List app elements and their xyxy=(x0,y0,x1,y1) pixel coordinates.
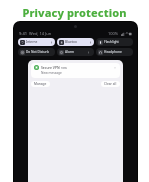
staticText: Clear all xyxy=(104,82,117,86)
staticText: Privacy protection xyxy=(22,5,127,20)
button[interactable]: Secure VPN xyxy=(31,63,120,78)
staticText: 9:41 xyxy=(19,31,27,36)
staticText: 100% xyxy=(108,31,119,36)
button[interactable]: Do Not Disturb xyxy=(18,48,55,56)
staticText: now xyxy=(61,66,67,70)
button[interactable]: Manage xyxy=(31,81,50,87)
button[interactable]: Flashlight xyxy=(96,38,133,46)
button[interactable]: Internet xyxy=(18,38,55,46)
staticText: Flashlight xyxy=(104,40,119,44)
button[interactable]: Expand notification xyxy=(113,66,117,70)
button[interactable]: Alarm xyxy=(57,48,94,56)
staticText: Do Not Disturb xyxy=(26,50,49,54)
staticText: Alarm xyxy=(65,50,75,54)
staticText: Secure VPN xyxy=(41,65,60,70)
button[interactable]: Headphone needs xyxy=(96,48,133,56)
staticText: Bluetooth xyxy=(65,40,77,44)
staticText: Wed, 14 Jun xyxy=(29,31,52,36)
button[interactable]: Clear all xyxy=(101,81,120,87)
staticText: New message xyxy=(41,71,62,75)
staticText: Manage xyxy=(34,82,47,86)
staticText: Internet xyxy=(26,40,38,44)
staticText: Headphone needs xyxy=(104,50,131,54)
button[interactable]: Bluetooth xyxy=(57,38,94,46)
